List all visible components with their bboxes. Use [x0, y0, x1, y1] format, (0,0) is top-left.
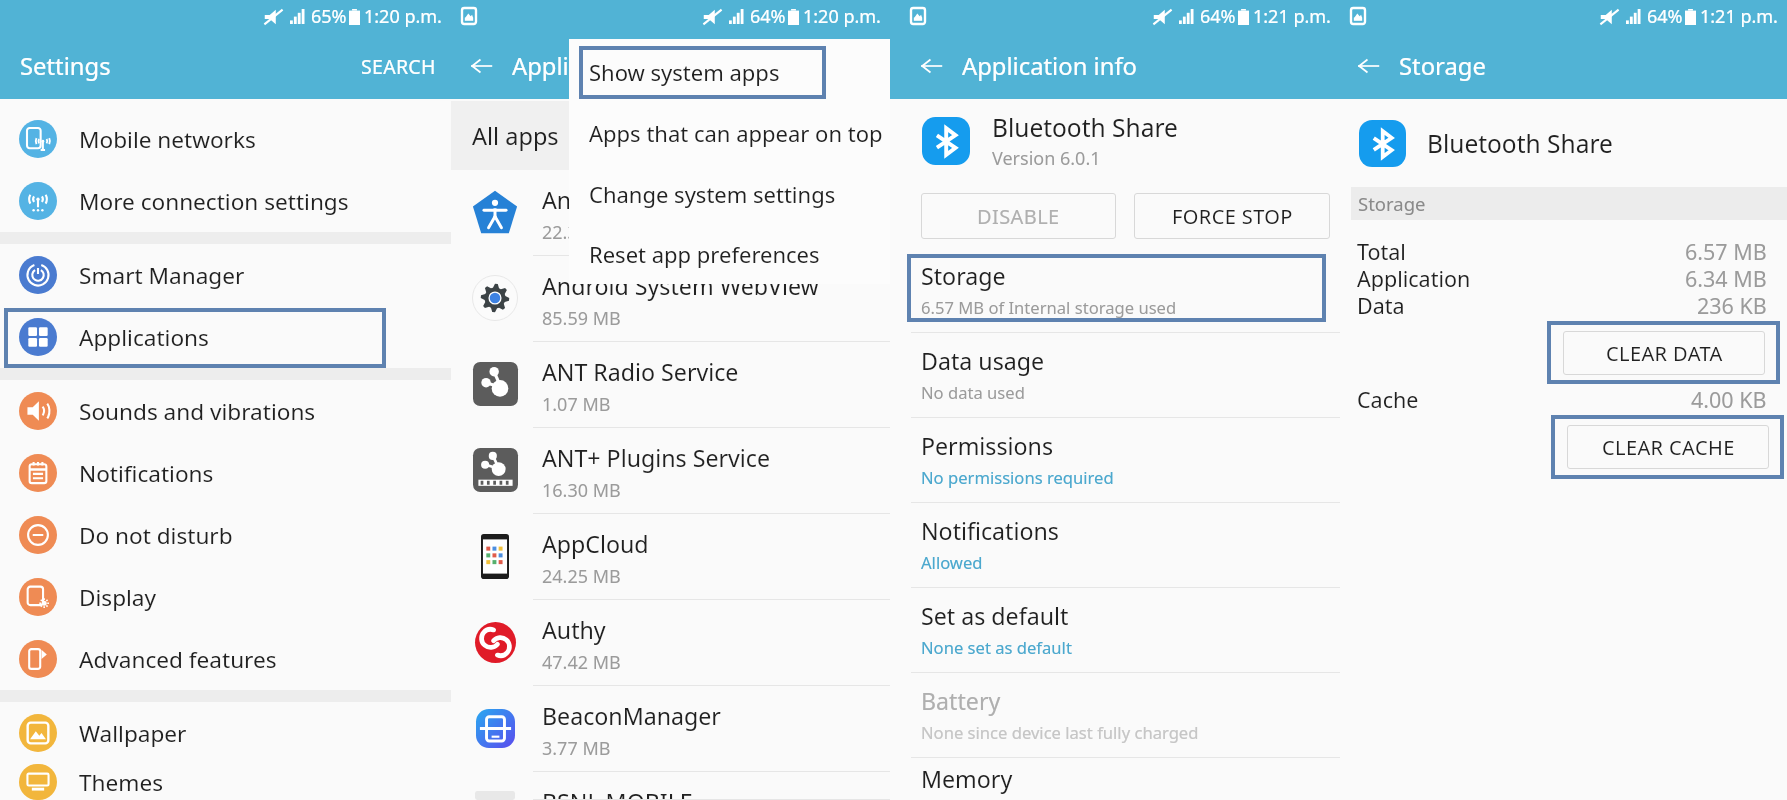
staticText: 64%: [750, 4, 786, 29]
staticText: FORCE STOP: [1172, 203, 1293, 230]
staticText: Battery: [921, 685, 1001, 717]
staticText: Android System WebView: [542, 270, 819, 302]
button[interactable]: Advanced features: [0, 628, 451, 690]
button[interactable]: CLEAR DATA: [1563, 331, 1765, 375]
staticText: Smart Manager: [79, 260, 245, 291]
button[interactable]: CLEAR CACHE: [1567, 425, 1769, 469]
staticText: ANT+ Plugins Service: [542, 442, 771, 474]
staticText: BSNL MOBILE: [542, 786, 693, 800]
button[interactable]: Navigate up: [1358, 56, 1379, 76]
staticText: SEARCH: [361, 53, 436, 80]
staticText: BeaconManager: [542, 700, 721, 732]
staticText: Themes: [79, 767, 163, 798]
staticText: Sounds and vibrations: [79, 396, 316, 427]
button[interactable]: SEARCH: [358, 47, 439, 86]
staticText: 6.57 MB of Internal storage used: [921, 296, 1177, 319]
staticText: Notifications: [921, 515, 1059, 547]
button[interactable]: More connection settings: [0, 170, 451, 232]
button[interactable]: Battery: [890, 672, 1340, 757]
staticText: Do not disturb: [79, 520, 233, 551]
button[interactable]: Set as default: [890, 587, 1340, 672]
button[interactable]: Android System WebView: [451, 256, 890, 331]
staticText: Memory: [921, 763, 1013, 795]
staticText: Data usage: [921, 345, 1045, 377]
button[interactable]: Change system settings: [569, 163, 891, 224]
button[interactable]: Navigate up: [921, 56, 942, 76]
staticText: Total: [1357, 237, 1406, 264]
staticText: Data: [1357, 291, 1405, 318]
staticText: CLEAR DATA: [1606, 340, 1723, 367]
staticText: 6.34 MB: [1685, 264, 1767, 291]
button[interactable]: Navigate up: [471, 56, 492, 76]
staticText: Applications: [79, 322, 209, 353]
button[interactable]: FORCE STOP: [1134, 193, 1330, 239]
staticText: AppCloud: [542, 528, 649, 560]
button[interactable]: Android Accessibility Suite: [451, 170, 890, 245]
button[interactable]: ANT Radio Service: [451, 342, 890, 417]
staticText: 1:20 p.m.: [364, 4, 442, 29]
staticText: No permissions required: [921, 466, 1114, 489]
button[interactable]: Notifications: [890, 502, 1340, 587]
staticText: DISABLE: [977, 203, 1060, 230]
button[interactable]: Memory: [890, 757, 1340, 800]
staticText: 64%: [1200, 4, 1236, 29]
staticText: Apps that can appear on top: [589, 118, 883, 148]
staticText: None since device last fully charged: [921, 721, 1199, 744]
button[interactable]: Data usage: [890, 332, 1340, 417]
staticText: 1:20 p.m.: [803, 4, 881, 29]
button[interactable]: DISABLE: [921, 193, 1116, 239]
staticText: 64%: [1647, 4, 1683, 29]
staticText: Cache: [1357, 385, 1419, 412]
button[interactable]: Sounds and vibrations: [0, 380, 451, 442]
button[interactable]: Do not disturb: [0, 504, 451, 566]
staticText: Permissions: [921, 430, 1054, 462]
button[interactable]: BSNL MOBILE: [451, 772, 890, 800]
staticText: Settings: [20, 50, 111, 82]
button[interactable]: AppCloud: [451, 514, 890, 589]
staticText: Storage: [921, 260, 1006, 292]
staticText: None set as default: [921, 636, 1072, 659]
button[interactable]: Applications: [0, 306, 451, 368]
button[interactable]: Smart Manager: [0, 244, 451, 306]
staticText: 1:21 p.m.: [1253, 4, 1331, 29]
button[interactable]: Display: [0, 566, 451, 628]
button[interactable]: Permissions: [890, 417, 1340, 502]
staticText: 22.36 MB: [542, 220, 621, 245]
staticText: Show system apps: [589, 57, 780, 87]
staticText: No data used: [921, 381, 1025, 404]
staticText: 65%: [311, 4, 347, 29]
button[interactable]: Authy: [451, 600, 890, 675]
staticText: Bluetooth Share: [992, 111, 1178, 144]
staticText: ANT Radio Service: [542, 356, 739, 388]
button[interactable]: Themes: [0, 764, 451, 800]
button[interactable]: Storage: [890, 247, 1340, 332]
button[interactable]: Reset app preferences: [569, 224, 891, 284]
staticText: Storage: [1399, 50, 1486, 82]
button[interactable]: Apps that can appear on top: [569, 102, 891, 163]
button[interactable]: ANT+ Plugins Service: [451, 428, 890, 503]
staticText: 4.00 KB: [1691, 385, 1767, 412]
button[interactable]: Notifications: [0, 442, 451, 504]
staticText: Change system settings: [589, 179, 836, 209]
staticText: Wallpaper: [79, 718, 187, 749]
staticText: Display: [79, 582, 157, 613]
staticText: 3.77 MB: [542, 736, 611, 761]
staticText: Version 6.0.1: [992, 146, 1101, 171]
staticText: 1:21 p.m.: [1700, 4, 1778, 29]
button[interactable]: Show system apps: [569, 41, 891, 102]
staticText: Bluetooth Share: [1427, 127, 1613, 160]
button[interactable]: Wallpaper: [0, 702, 451, 764]
staticText: Set as default: [921, 600, 1069, 632]
staticText: 24.25 MB: [542, 564, 621, 589]
staticText: CLEAR CACHE: [1602, 434, 1735, 461]
staticText: Allowed: [921, 551, 983, 574]
button[interactable]: Mobile networks: [0, 108, 451, 170]
staticText: Application: [1357, 264, 1471, 291]
staticText: 6.57 MB: [1685, 237, 1767, 264]
staticText: 85.59 MB: [542, 306, 621, 331]
button[interactable]: All apps: [451, 101, 890, 170]
staticText: Reset app preferences: [589, 239, 820, 269]
button[interactable]: BeaconManager: [451, 686, 890, 761]
staticText: More connection settings: [79, 186, 349, 217]
staticText: Applications: [512, 50, 649, 82]
